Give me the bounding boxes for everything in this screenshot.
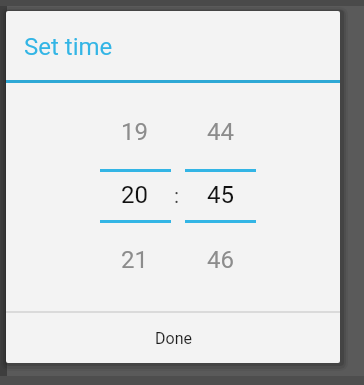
staticText: : — [174, 184, 180, 209]
button[interactable]: 19 — [99, 112, 170, 152]
button[interactable]: 45 — [185, 171, 256, 219]
staticText: 21 — [121, 246, 148, 274]
button[interactable]: 21 — [99, 240, 170, 280]
staticText: 45 — [207, 181, 234, 209]
button[interactable]: 44 — [185, 112, 256, 152]
staticText: Done — [155, 329, 192, 348]
button[interactable]: 46 — [185, 240, 256, 280]
staticText: 19 — [121, 118, 148, 146]
button[interactable]: 20 — [99, 171, 170, 219]
staticText: Set time — [24, 33, 113, 61]
staticText: 44 — [207, 118, 234, 146]
staticText: 20 — [121, 181, 148, 209]
button[interactable]: Done — [6, 313, 340, 363]
staticText: 46 — [207, 246, 234, 274]
